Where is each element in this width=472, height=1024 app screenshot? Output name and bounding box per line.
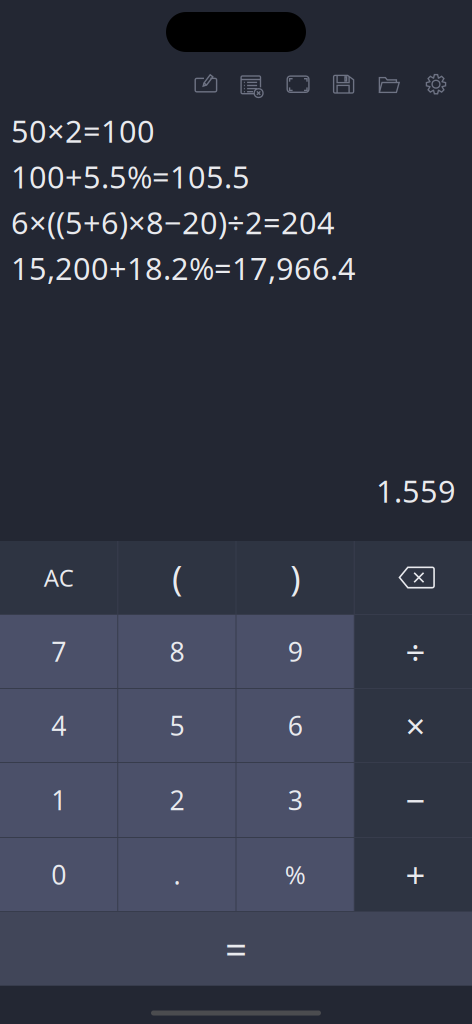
staticText: 3	[288, 782, 303, 818]
staticText: (	[172, 554, 182, 601]
button[interactable]: Clear history	[229, 63, 275, 103]
button[interactable]: 0	[0, 838, 117, 911]
staticText: 6×((5+6)×8−20)÷2=204	[11, 201, 335, 243]
button[interactable]: 5	[118, 689, 235, 762]
button[interactable]: +	[355, 838, 472, 911]
button[interactable]: ×	[355, 689, 472, 762]
button[interactable]: Settings	[413, 63, 459, 103]
button[interactable]: =	[0, 912, 472, 985]
staticText: ÷	[405, 628, 425, 675]
staticText: 8	[169, 633, 184, 670]
staticText: +	[405, 851, 425, 898]
staticText: AC	[44, 561, 74, 594]
staticText: %	[285, 857, 306, 892]
button[interactable]: 8	[118, 615, 235, 688]
staticText: 5	[169, 707, 184, 744]
button[interactable]: −	[355, 763, 472, 837]
button[interactable]: 7	[0, 615, 117, 688]
staticText: 100+5.5%=105.5	[11, 156, 250, 198]
button[interactable]: Delete	[355, 541, 472, 614]
button[interactable]: 1	[0, 763, 117, 837]
staticText: =	[225, 922, 247, 975]
button[interactable]: 3	[236, 763, 354, 837]
staticText: 6	[288, 707, 303, 744]
button[interactable]: 9	[236, 615, 354, 688]
button[interactable]: %	[236, 838, 354, 911]
button[interactable]: (	[118, 541, 235, 614]
button[interactable]: 4	[0, 689, 117, 762]
button[interactable]: Save	[321, 63, 367, 103]
button[interactable]: )	[236, 541, 354, 614]
staticText: 4	[51, 707, 66, 744]
button[interactable]: 6	[236, 689, 354, 762]
button[interactable]: Memory	[275, 63, 321, 103]
staticText: 1	[51, 782, 66, 818]
staticText: 0	[51, 856, 66, 893]
staticText: 50×2=100	[11, 110, 155, 152]
staticText: ×	[405, 702, 425, 749]
staticText: −	[405, 776, 425, 824]
button[interactable]: AC	[0, 541, 117, 614]
button[interactable]: 2	[118, 763, 235, 837]
staticText: .	[173, 856, 180, 893]
button[interactable]: Open	[367, 63, 413, 103]
button[interactable]: Compose	[183, 63, 229, 103]
staticText: 9	[288, 633, 303, 670]
staticText: )	[290, 554, 300, 601]
button[interactable]: ÷	[355, 615, 472, 688]
staticText: 15,200+18.2%=17,966.4	[11, 247, 356, 289]
button[interactable]: .	[118, 838, 235, 911]
staticText: 1.559	[376, 470, 456, 512]
staticText: 2	[169, 782, 184, 818]
staticText: 7	[51, 633, 66, 670]
